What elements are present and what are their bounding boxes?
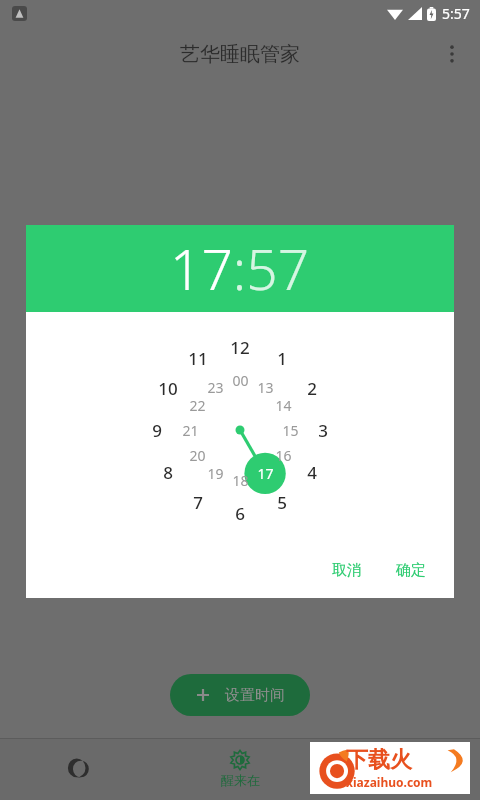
staticText: 9 [152, 419, 162, 441]
staticText: 醒来在 [221, 772, 260, 788]
staticText: 21 [182, 421, 199, 440]
staticText: 艺华睡眠管家 [180, 42, 300, 67]
staticText: 20 [189, 446, 206, 465]
staticText: 3 [318, 419, 328, 441]
staticText: 6 [235, 502, 245, 524]
staticText: 22 [189, 396, 206, 415]
staticText: xiazaihuo.com [346, 774, 433, 790]
staticText: 16 [275, 446, 292, 465]
staticText: 17:57 [170, 231, 310, 306]
staticText: 5:57 [442, 4, 470, 23]
staticText: 23 [207, 378, 224, 397]
staticText: 取消 [332, 561, 362, 580]
button[interactable]: 确定 [386, 553, 436, 588]
button[interactable]: 设置时间 [170, 674, 310, 716]
staticText: 1 [277, 347, 287, 369]
button[interactable]: 醒来在 [160, 738, 320, 800]
staticText: 10 [158, 377, 178, 399]
staticText: 00 [232, 371, 249, 390]
staticText: 12 [230, 336, 250, 358]
staticText: 17 [257, 464, 274, 483]
button[interactable]: 取消 [322, 553, 372, 588]
staticText: 2 [307, 377, 317, 399]
staticText: 14 [275, 396, 292, 415]
staticText: 设置时间 [225, 686, 285, 705]
staticText: 确定 [396, 561, 426, 580]
staticText: 13 [257, 378, 274, 397]
button[interactable]: Sleep at [0, 738, 160, 800]
staticText: 11 [188, 347, 208, 369]
staticText: 8 [163, 461, 173, 483]
staticText: 7 [193, 491, 203, 513]
staticText: 4 [307, 461, 317, 483]
staticText: 15 [282, 421, 299, 440]
staticText: 下载火 [346, 746, 412, 774]
staticText: 5 [277, 491, 287, 513]
staticText: 19 [207, 464, 224, 483]
button[interactable]: More options [432, 34, 472, 74]
staticText: 18 [232, 471, 249, 490]
